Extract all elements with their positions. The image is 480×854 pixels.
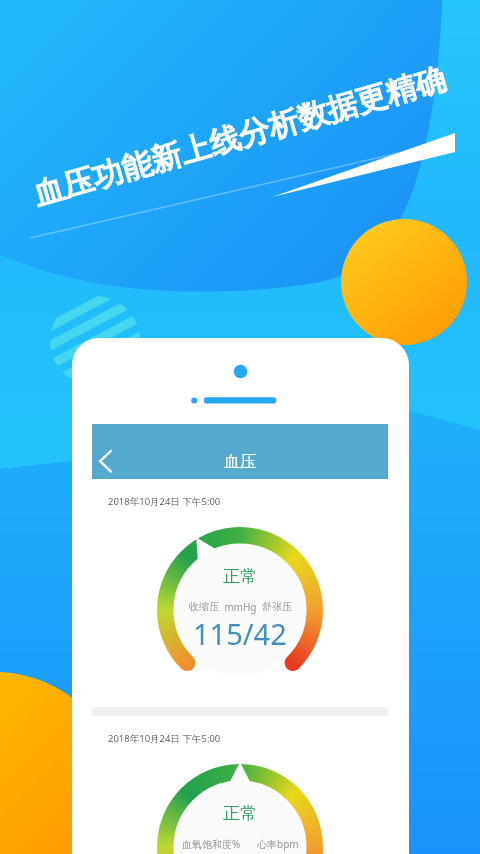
- staticText: 正常: [223, 566, 257, 587]
- staticText: 血压功能新上线分析数据更精确: [29, 60, 450, 214]
- staticText: 2018年10月24日 下午5:00: [108, 495, 221, 508]
- staticText: 115/42: [193, 614, 287, 653]
- staticText: mmHg: [219, 600, 262, 614]
- staticText: 舒张压: [262, 600, 292, 613]
- button[interactable]: Back: [92, 424, 388, 479]
- staticText: 正常: [223, 803, 257, 824]
- staticText: 收缩压: [189, 600, 219, 613]
- staticText: 血氧饱和度%: [182, 837, 241, 851]
- button[interactable]: Back: [92, 424, 122, 479]
- staticText: 心率bpm: [257, 837, 299, 851]
- staticText: 2018年10月24日 下午5:00: [108, 732, 221, 745]
- staticText: 血压: [224, 452, 256, 472]
